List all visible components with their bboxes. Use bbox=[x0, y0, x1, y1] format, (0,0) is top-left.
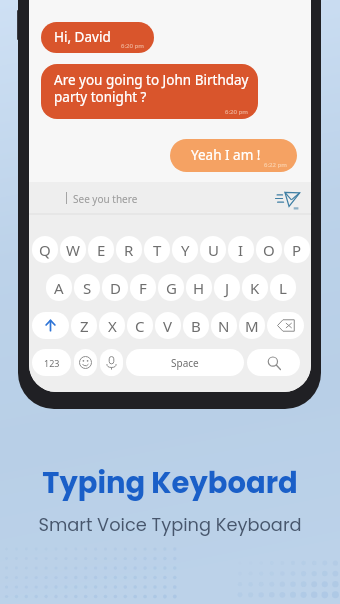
button[interactable]: Hi, David bbox=[41, 22, 154, 53]
staticText: L bbox=[279, 278, 287, 298]
staticText: J bbox=[225, 278, 230, 298]
button[interactable]: P bbox=[284, 236, 310, 263]
staticText: F bbox=[139, 278, 147, 298]
staticText: I bbox=[238, 240, 244, 260]
staticText: Are you going to John Birthday party ton… bbox=[54, 71, 250, 106]
staticText: O bbox=[263, 240, 275, 260]
staticText: G bbox=[166, 278, 177, 298]
staticText: U bbox=[208, 240, 219, 260]
staticText: Hi, David bbox=[54, 28, 146, 46]
button[interactable]: G bbox=[158, 274, 184, 301]
staticText: See you there bbox=[73, 192, 138, 206]
button[interactable]: Shift bbox=[32, 312, 69, 339]
button[interactable]: K bbox=[242, 274, 268, 301]
button[interactable]: Send message bbox=[275, 185, 301, 211]
staticText: P bbox=[292, 240, 302, 260]
staticText: A bbox=[54, 278, 64, 298]
button[interactable]: Space bbox=[126, 349, 244, 376]
staticText: Smart Voice Typing Keyboard bbox=[38, 512, 302, 537]
button[interactable]: E bbox=[88, 236, 114, 263]
button[interactable]: V bbox=[155, 312, 181, 339]
button[interactable]: S bbox=[74, 274, 100, 301]
staticText: Q bbox=[39, 240, 51, 260]
button[interactable]: D bbox=[102, 274, 128, 301]
button[interactable]: Are you going to John Birthday party ton… bbox=[41, 64, 258, 119]
button[interactable]: R bbox=[116, 236, 142, 263]
staticText: 6:20 pm bbox=[225, 108, 248, 116]
button[interactable]: Q bbox=[32, 236, 58, 263]
button[interactable]: J bbox=[214, 274, 240, 301]
button[interactable]: 123 bbox=[32, 349, 71, 376]
staticText: K bbox=[250, 278, 260, 298]
staticText: X bbox=[108, 316, 117, 336]
button[interactable]: M bbox=[239, 312, 265, 339]
button[interactable]: Voice input bbox=[100, 349, 123, 376]
staticText: W bbox=[66, 240, 80, 260]
staticText: 6:22 pm bbox=[264, 161, 287, 169]
staticText: E bbox=[97, 240, 106, 260]
button[interactable]: H bbox=[186, 274, 212, 301]
staticText: M bbox=[245, 316, 259, 336]
button[interactable]: Z bbox=[71, 312, 97, 339]
staticText: V bbox=[163, 316, 173, 336]
staticText: R bbox=[124, 240, 134, 260]
button[interactable]: Backspace bbox=[267, 312, 304, 339]
staticText: Z bbox=[80, 316, 89, 336]
staticText: 6:20 pm bbox=[121, 42, 144, 50]
staticText: N bbox=[218, 316, 230, 336]
staticText: S bbox=[83, 278, 92, 298]
staticText: 123 bbox=[44, 357, 60, 369]
staticText: H bbox=[193, 278, 205, 298]
staticText: B bbox=[191, 316, 201, 336]
button[interactable]: W bbox=[60, 236, 86, 263]
button[interactable]: U bbox=[200, 236, 226, 263]
staticText: D bbox=[110, 278, 121, 298]
button[interactable]: B bbox=[183, 312, 209, 339]
staticText: Y bbox=[181, 240, 190, 260]
button[interactable]: I bbox=[228, 236, 254, 263]
button[interactable]: C bbox=[127, 312, 153, 339]
button[interactable]: Search bbox=[247, 349, 300, 376]
button[interactable]: Y bbox=[172, 236, 198, 263]
staticText: C bbox=[135, 316, 145, 336]
button[interactable]: X bbox=[99, 312, 125, 339]
staticText: Space bbox=[171, 356, 199, 370]
button[interactable]: Yeah I am ! bbox=[170, 139, 297, 172]
button[interactable]: Emoji bbox=[74, 349, 97, 376]
button[interactable]: N bbox=[211, 312, 237, 339]
staticText: Typing Keyboard bbox=[42, 463, 298, 504]
button[interactable]: O bbox=[256, 236, 282, 263]
staticText: T bbox=[153, 240, 162, 260]
button[interactable]: A bbox=[46, 274, 72, 301]
staticText: Yeah I am ! bbox=[191, 146, 289, 164]
button[interactable]: F bbox=[130, 274, 156, 301]
button[interactable]: L bbox=[270, 274, 296, 301]
button[interactable]: T bbox=[144, 236, 170, 263]
